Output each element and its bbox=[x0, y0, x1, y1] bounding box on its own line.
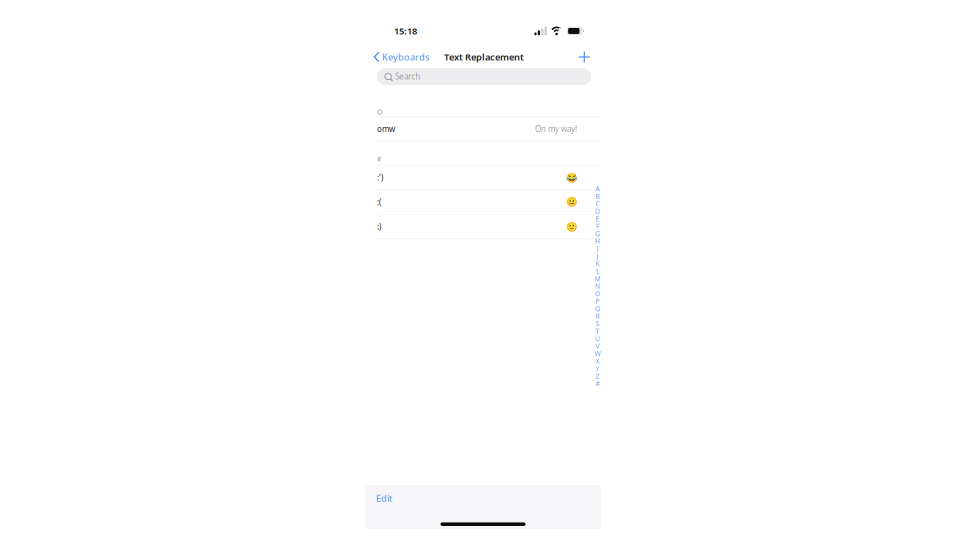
button[interactable]: :') bbox=[374, 166, 601, 189]
staticText: :) bbox=[377, 221, 381, 232]
staticText: Y bbox=[595, 364, 599, 373]
button[interactable]: Keyboards bbox=[373, 46, 433, 68]
staticText: G bbox=[595, 229, 600, 238]
staticText: :( bbox=[377, 197, 381, 207]
staticText: # bbox=[595, 379, 599, 388]
staticText: O bbox=[377, 107, 382, 116]
button[interactable]: Edit bbox=[371, 488, 397, 508]
staticText: A bbox=[595, 184, 599, 193]
staticText: L bbox=[596, 267, 599, 276]
staticText: O bbox=[595, 289, 600, 298]
staticText: W bbox=[594, 349, 600, 358]
button[interactable]: :) bbox=[374, 215, 601, 238]
staticText: K bbox=[595, 259, 599, 268]
staticText: On my way! bbox=[535, 124, 577, 134]
staticText: V bbox=[595, 342, 599, 351]
staticText: F bbox=[596, 222, 599, 231]
staticText: Keyboards bbox=[382, 51, 429, 63]
staticText: 🙂 bbox=[566, 221, 578, 232]
staticText: B bbox=[595, 192, 599, 201]
staticText: M bbox=[594, 274, 600, 283]
staticText: P bbox=[595, 297, 599, 306]
staticText: H bbox=[595, 237, 600, 246]
staticText: Text Replacement bbox=[444, 51, 524, 63]
staticText: N bbox=[595, 282, 600, 291]
staticText: I bbox=[596, 244, 598, 253]
staticText: Search bbox=[395, 71, 420, 82]
staticText: U bbox=[595, 334, 600, 343]
button[interactable]: omw bbox=[374, 117, 601, 141]
staticText: X bbox=[595, 357, 599, 366]
staticText: Z bbox=[595, 372, 599, 381]
button[interactable]: Section index bbox=[594, 185, 601, 387]
button[interactable]: Add text replacement bbox=[576, 47, 593, 67]
staticText: S bbox=[595, 319, 599, 328]
staticText: omw bbox=[377, 124, 395, 134]
staticText: Edit bbox=[376, 492, 392, 504]
staticText: :') bbox=[377, 172, 383, 183]
staticText: J bbox=[596, 252, 598, 261]
staticText: # bbox=[377, 154, 381, 163]
staticText: 😂 bbox=[566, 172, 578, 183]
staticText: R bbox=[595, 312, 599, 321]
staticText: Q bbox=[595, 304, 600, 313]
staticText: C bbox=[595, 199, 599, 208]
staticText: 15:18 bbox=[394, 25, 417, 37]
button[interactable]: :( bbox=[374, 190, 601, 214]
staticText: T bbox=[595, 327, 599, 336]
staticText: D bbox=[595, 207, 600, 216]
staticText: 😐 bbox=[566, 197, 578, 207]
staticText: E bbox=[595, 214, 599, 223]
